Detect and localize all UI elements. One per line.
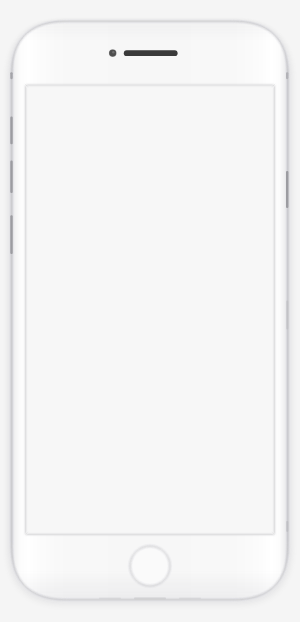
button[interactable]: Power: [285, 171, 292, 208]
button[interactable]: Ring/Silent switch: [8, 70, 15, 81]
button[interactable]: Home button: [130, 546, 171, 587]
button[interactable]: Volume up: [8, 116, 15, 145]
button[interactable]: Volume down: [8, 160, 15, 194]
